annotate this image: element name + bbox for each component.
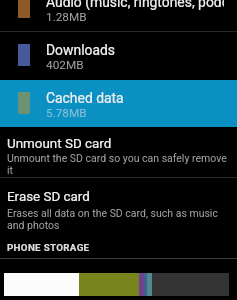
button[interactable]: Unmount SD card <box>0 129 237 176</box>
staticText: Downloads <box>46 42 116 58</box>
staticText: Unmount the SD card so you can safely re… <box>7 152 231 176</box>
staticText: Erase SD card <box>7 189 90 205</box>
staticText: 5.78MB <box>46 106 87 120</box>
button[interactable]: Erase SD card <box>0 182 237 231</box>
staticText: Erases all data on the SD card, such as … <box>7 207 231 231</box>
staticText: 402MB <box>46 58 84 72</box>
staticText: PHONE STORAGE <box>7 242 90 253</box>
staticText: Cached data <box>46 90 124 106</box>
staticText: Audio (music, ringtones, podcasts, etc.) <box>46 0 224 10</box>
staticText: 1.28MB <box>46 10 87 24</box>
button[interactable]: Cached data <box>0 80 237 127</box>
button[interactable]: Downloads <box>0 32 237 80</box>
staticText: Unmount SD card <box>7 136 112 152</box>
button[interactable]: Audio (music, ringtones, podcasts, etc.) <box>0 0 237 23</box>
